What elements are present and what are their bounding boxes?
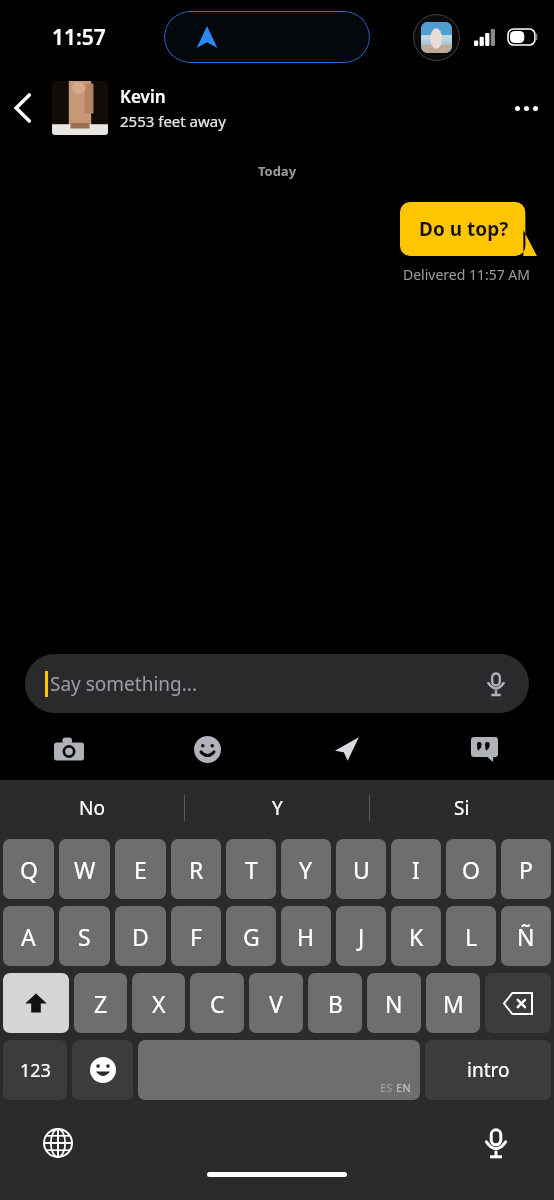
button[interactable]: Q (3, 839, 54, 899)
staticText: Do u top? (419, 216, 509, 242)
staticText: C (210, 988, 225, 1019)
button[interactable]: Say something... (25, 654, 529, 713)
staticText: T (245, 854, 258, 885)
staticText: S (78, 921, 91, 952)
staticText: Delivered 11:57 AM (0, 265, 530, 284)
staticText: 123 (20, 1058, 51, 1083)
button[interactable]: Z (74, 973, 127, 1033)
staticText: P (519, 854, 533, 885)
button[interactable]: R (171, 839, 221, 899)
button[interactable]: W (59, 839, 110, 899)
button[interactable]: O (446, 839, 496, 899)
button[interactable]: Si (370, 780, 554, 835)
button[interactable]: Kevin (52, 81, 226, 135)
staticText: Q (20, 854, 38, 885)
button[interactable]: No (0, 780, 184, 835)
staticText: 11:57 (52, 23, 106, 52)
button[interactable]: Ñ (501, 906, 551, 966)
button[interactable]: T (226, 839, 276, 899)
button[interactable]: C (190, 973, 244, 1033)
staticText: EN (396, 1080, 411, 1095)
staticText: Today (0, 162, 554, 180)
staticText: I (412, 854, 420, 885)
button[interactable]: G (226, 906, 276, 966)
button[interactable]: H (281, 906, 331, 966)
staticText: Say something... (50, 671, 198, 697)
button[interactable]: Send location (276, 727, 415, 771)
staticText: No (79, 795, 105, 821)
staticText: X (152, 988, 166, 1019)
button[interactable]: Shift (3, 973, 69, 1033)
button[interactable]: Y (281, 839, 331, 899)
staticText: Y (272, 795, 283, 821)
staticText: Ñ (517, 921, 535, 952)
button[interactable]: Change keyboard language (38, 1123, 78, 1163)
button[interactable]: Backspace (485, 973, 551, 1033)
staticText: V (269, 988, 283, 1019)
staticText: H (297, 921, 315, 952)
staticText: D (132, 921, 149, 952)
button[interactable]: Y (185, 780, 369, 835)
button[interactable]: Do u top? (400, 202, 537, 256)
staticText: L (465, 921, 478, 952)
staticText: F (190, 921, 202, 952)
button[interactable]: Voice message (477, 665, 515, 703)
button[interactable]: Back (0, 85, 46, 131)
button[interactable]: S (59, 906, 110, 966)
staticText: R (189, 854, 204, 885)
button[interactable]: Emoji (72, 1040, 133, 1100)
staticText: Si (454, 795, 470, 821)
button[interactable]: M (426, 973, 480, 1033)
staticText: Z (94, 988, 108, 1019)
staticText: K (409, 921, 424, 952)
button[interactable]: B (308, 973, 362, 1033)
staticText: E (134, 854, 147, 885)
staticText: J (358, 921, 365, 952)
staticText: 2553 feet away (120, 111, 226, 131)
staticText: intro (467, 1057, 510, 1083)
button[interactable]: L (446, 906, 496, 966)
button[interactable]: V (249, 973, 303, 1033)
button[interactable]: U (336, 839, 386, 899)
button[interactable]: Dictation (476, 1123, 516, 1163)
button[interactable]: I (391, 839, 441, 899)
staticText: A (21, 921, 36, 952)
staticText: Y (299, 854, 313, 885)
button[interactable]: E (115, 839, 166, 899)
button[interactable]: Saved phrases (415, 727, 554, 771)
button[interactable]: N (367, 973, 421, 1033)
button[interactable]: Camera (0, 727, 138, 771)
button[interactable]: Space (138, 1040, 420, 1100)
button[interactable]: J (336, 906, 386, 966)
button[interactable]: More options (498, 80, 554, 136)
button[interactable]: X (132, 973, 185, 1033)
staticText: O (462, 854, 480, 885)
button[interactable]: P (501, 839, 551, 899)
button[interactable]: K (391, 906, 441, 966)
staticText: M (443, 988, 464, 1019)
button[interactable]: A (3, 906, 54, 966)
staticText: G (243, 921, 260, 952)
staticText: Kevin (120, 85, 166, 108)
button[interactable]: 123 (3, 1040, 67, 1100)
button[interactable]: D (115, 906, 166, 966)
staticText: U (353, 854, 370, 885)
button[interactable]: Emoji (138, 727, 276, 771)
staticText: N (385, 988, 403, 1019)
button[interactable]: F (171, 906, 221, 966)
staticText: B (328, 988, 343, 1019)
staticText: W (74, 854, 96, 885)
button[interactable]: intro (425, 1040, 551, 1100)
staticText: ES (380, 1080, 393, 1095)
